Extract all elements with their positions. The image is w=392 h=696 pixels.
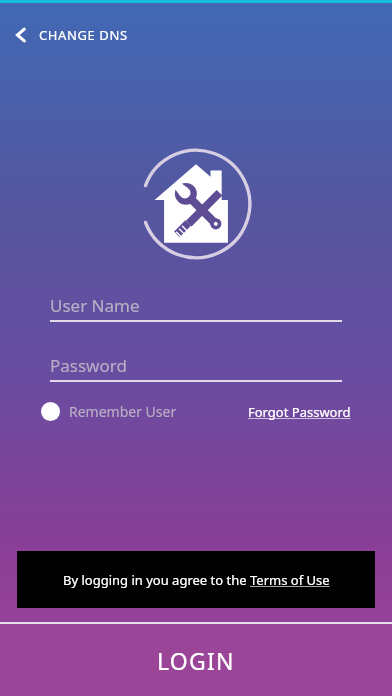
staticText: Terms of Use: [250, 571, 330, 589]
button[interactable]: LOGIN: [0, 624, 392, 696]
staticText: By logging in you agree to the: [63, 571, 250, 589]
button[interactable]: Back: [0, 10, 392, 60]
other: Back: [12, 26, 30, 44]
staticText: Remember User: [69, 402, 177, 421]
button[interactable]: By logging in you agree to the: [17, 551, 375, 608]
staticText: LOGIN: [157, 645, 235, 676]
staticText: Password: [50, 354, 127, 377]
button[interactable]: User Name: [50, 290, 342, 322]
button[interactable]: Password: [50, 350, 342, 382]
staticText: Forgot Password: [248, 403, 351, 421]
staticText: User Name: [50, 294, 140, 317]
staticText: CHANGE DNS: [39, 26, 128, 44]
button[interactable]: Remember User: [41, 402, 177, 421]
button[interactable]: Forgot Password: [248, 403, 351, 421]
